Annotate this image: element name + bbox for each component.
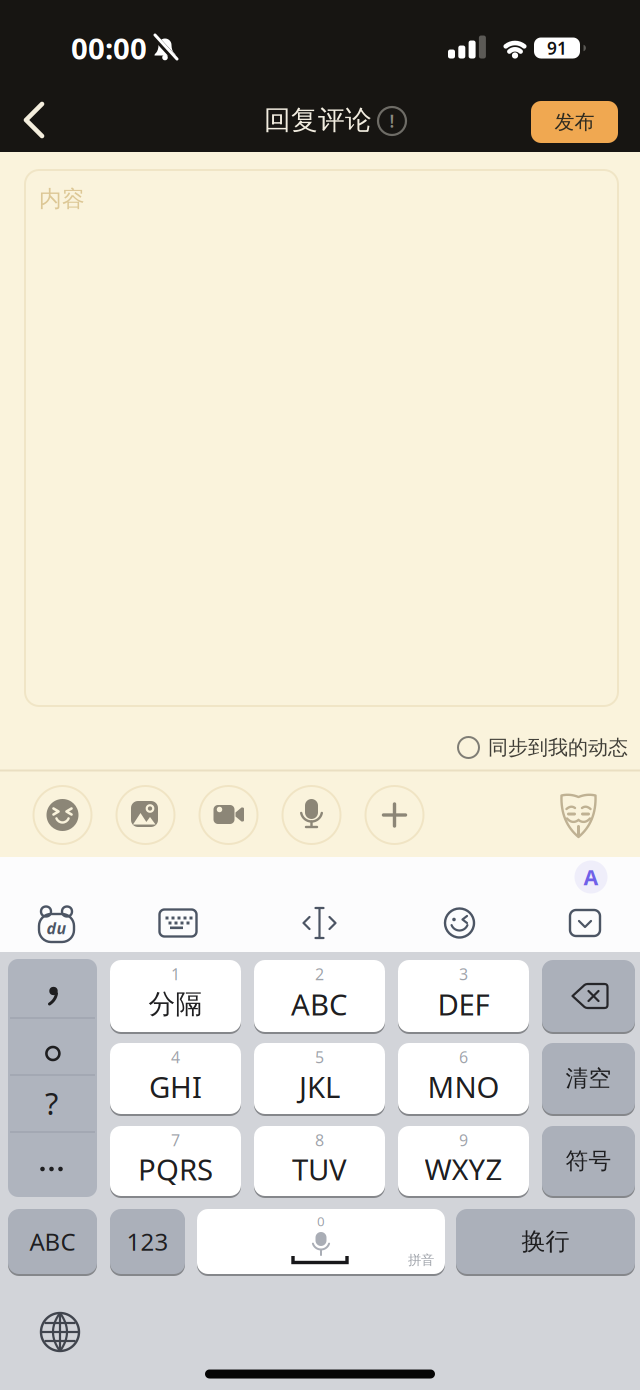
button[interactable]: 123: [110, 1209, 185, 1274]
button[interactable]: Emoji: [32, 785, 92, 845]
button[interactable]: Switch keyboard: [38, 1310, 82, 1354]
staticText: 内容: [39, 185, 85, 213]
staticText: TUV: [292, 1149, 347, 1188]
staticText: 清空: [565, 1065, 611, 1092]
button[interactable]: Anonymous: [556, 787, 600, 843]
staticText: ABC: [291, 984, 348, 1023]
staticText: 分隔: [148, 988, 202, 1020]
staticText: WXYZ: [424, 1149, 502, 1188]
button[interactable]: Hide keyboard: [570, 910, 600, 936]
button[interactable]: Emoji: [443, 907, 475, 939]
staticText: A: [583, 863, 598, 891]
button[interactable]: …: [8, 1132, 97, 1197]
button[interactable]: Back: [14, 98, 54, 142]
staticText: 0: [317, 1212, 325, 1230]
button[interactable]: Keyboard layout: [158, 908, 198, 938]
button[interactable]: 发布: [531, 101, 618, 143]
button[interactable]: 7: [110, 1126, 241, 1196]
button[interactable]: Delete: [542, 960, 635, 1032]
button[interactable]: 4: [110, 1043, 241, 1114]
button[interactable]: 清空: [542, 1043, 635, 1114]
button[interactable]: ，: [8, 959, 97, 1018]
button[interactable]: Video: [198, 785, 258, 845]
staticText: 5: [315, 1046, 324, 1068]
staticText: 符号: [565, 1147, 611, 1175]
staticText: MNO: [427, 1067, 499, 1106]
button[interactable]: 5: [254, 1043, 385, 1114]
staticText: 3: [459, 963, 468, 985]
staticText: GHI: [149, 1067, 202, 1106]
staticText: 9: [459, 1129, 468, 1151]
button[interactable]: Space: [197, 1209, 445, 1274]
staticText: du: [46, 917, 66, 939]
button[interactable]: Photo: [115, 785, 175, 845]
button[interactable]: 3: [398, 960, 529, 1032]
staticText: 8: [315, 1129, 324, 1151]
button[interactable]: ABC: [8, 1209, 97, 1274]
staticText: !: [389, 109, 394, 132]
button[interactable]: Assistant: [574, 860, 607, 893]
staticText: 拼音: [408, 1252, 434, 1268]
button[interactable]: 9: [398, 1126, 529, 1196]
button[interactable]: Info: [377, 106, 407, 136]
staticText: 00:00: [71, 28, 147, 67]
staticText: 4: [171, 1046, 180, 1068]
staticText: DEF: [437, 984, 489, 1023]
button[interactable]: 符号: [542, 1126, 635, 1196]
staticText: 1: [171, 963, 180, 985]
button[interactable]: ？: [8, 1075, 97, 1132]
staticText: ABC: [29, 1226, 75, 1257]
staticText: 7: [171, 1129, 180, 1151]
button[interactable]: 8: [254, 1126, 385, 1196]
button[interactable]: Move cursor: [301, 906, 337, 940]
staticText: JKL: [299, 1067, 340, 1106]
staticText: 发布: [554, 110, 594, 134]
staticText: 换行: [521, 1227, 569, 1256]
staticText: 6: [459, 1046, 468, 1068]
button[interactable]: 6: [398, 1043, 529, 1114]
staticText: PQRS: [138, 1149, 213, 1188]
staticText: 2: [315, 963, 324, 985]
button[interactable]: Baidu IME: [34, 904, 78, 942]
button[interactable]: 。: [8, 1018, 97, 1075]
staticText: 回复评论: [264, 104, 372, 136]
staticText: 同步到我的动态: [488, 735, 628, 760]
button[interactable]: Voice: [281, 785, 341, 845]
button[interactable]: 同步到我的动态: [458, 735, 628, 760]
button[interactable]: 1: [110, 960, 241, 1032]
button[interactable]: 2: [254, 960, 385, 1032]
button[interactable]: 换行: [456, 1209, 635, 1274]
staticText: 123: [126, 1226, 168, 1257]
staticText: ?: [45, 1083, 58, 1123]
staticText: 91: [547, 36, 567, 59]
button[interactable]: More: [364, 785, 424, 845]
